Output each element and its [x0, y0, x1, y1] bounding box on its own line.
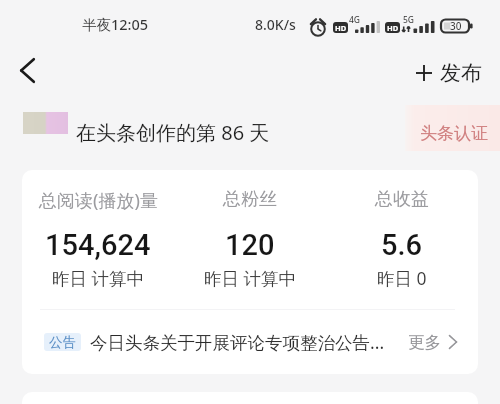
- staticText: 154,624: [45, 228, 151, 262]
- staticText: 昨日 计算中: [52, 266, 145, 290]
- staticText: 5.6: [381, 228, 423, 262]
- staticText: 总粉丝: [223, 188, 277, 211]
- staticText: 半夜12:05: [82, 14, 149, 34]
- staticText: 120: [225, 228, 275, 262]
- button[interactable]: 发布: [416, 60, 482, 86]
- staticText: 更多: [408, 332, 441, 353]
- button[interactable]: 总阅读(播放)量: [22, 188, 174, 308]
- button[interactable]: 头条认证: [405, 105, 500, 151]
- staticText: HD: [335, 23, 347, 33]
- staticText: 昨日 计算中: [204, 266, 297, 290]
- button[interactable]: 总收益: [326, 188, 478, 308]
- staticText: 总收益: [375, 188, 429, 211]
- staticText: 公告: [49, 334, 76, 351]
- button[interactable]: 总粉丝: [174, 188, 326, 308]
- staticText: 5G: [403, 14, 415, 26]
- staticText: 发布: [440, 60, 482, 86]
- staticText: 8.0K/s: [255, 15, 296, 34]
- staticText: 在头条创作的第 86 天: [76, 119, 270, 146]
- staticText: HD: [387, 23, 399, 33]
- staticText: 4G: [349, 14, 361, 26]
- button[interactable]: Back: [5, 48, 49, 92]
- button[interactable]: 公告: [22, 310, 478, 374]
- staticText: 头条认证: [420, 123, 488, 144]
- staticText: 昨日 0: [377, 266, 427, 290]
- staticText: 总阅读(播放)量: [39, 188, 158, 213]
- staticText: 30: [450, 19, 462, 33]
- staticText: 今日头条关于开展评论专项整治公告...: [90, 330, 385, 354]
